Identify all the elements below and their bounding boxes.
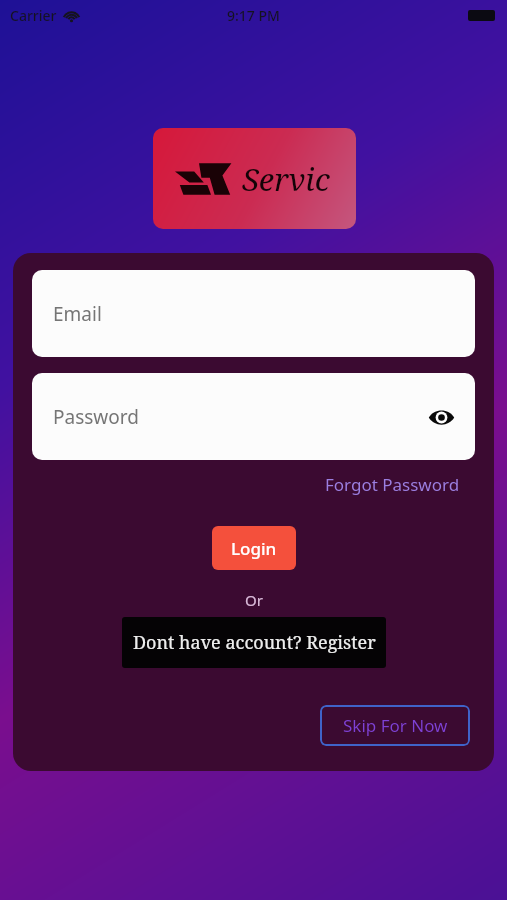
button[interactable]: Servic logo (153, 128, 356, 229)
staticText: Or (245, 590, 263, 610)
button[interactable]: Email (32, 270, 475, 357)
button[interactable]: Dont have account? Register (122, 617, 386, 668)
button[interactable]: Login (212, 526, 296, 570)
button[interactable]: Show password (423, 399, 459, 435)
staticText: 9:17 PM (227, 6, 280, 25)
button[interactable]: Skip For Now (320, 705, 470, 746)
staticText: Forgot Password (325, 473, 460, 496)
staticText: Dont have account? Register (133, 630, 376, 655)
staticText: Login (231, 537, 277, 560)
staticText: Password (53, 404, 139, 430)
staticText: Email (53, 301, 102, 327)
staticText: Skip For Now (343, 714, 448, 737)
staticText: Servic (242, 158, 330, 200)
button[interactable]: Password (32, 373, 475, 460)
button[interactable]: Forgot Password (321, 469, 464, 500)
staticText: Carrier (10, 6, 57, 25)
